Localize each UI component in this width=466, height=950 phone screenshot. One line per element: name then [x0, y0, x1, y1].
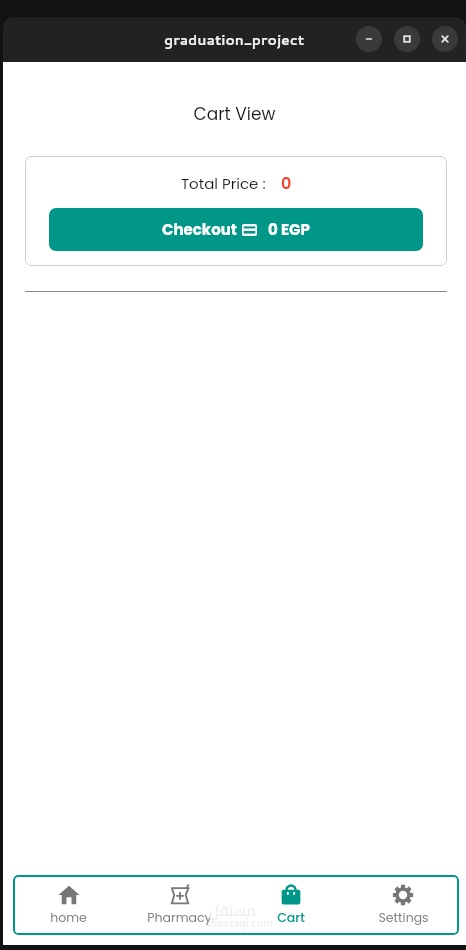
button[interactable]: Close	[432, 26, 458, 52]
staticText: Cart View	[3, 102, 466, 126]
staticText: Total Price :	[181, 173, 266, 194]
staticText: مستقل	[209, 896, 257, 924]
staticText: mostaql.com	[208, 915, 273, 931]
staticText: Cart	[277, 909, 305, 926]
button[interactable]: Settings	[347, 875, 459, 935]
staticText: graduation_project	[164, 30, 305, 50]
button[interactable]: Cart	[235, 875, 347, 935]
staticText: home	[50, 909, 87, 926]
button[interactable]: Maximize	[394, 26, 420, 52]
staticText: Pharmacy	[147, 909, 212, 926]
button[interactable]: home	[13, 875, 124, 935]
staticText: Settings	[378, 909, 429, 926]
button[interactable]: Checkout	[49, 208, 423, 251]
staticText: 0	[281, 172, 292, 194]
staticText: 0 EGP	[268, 219, 310, 240]
staticText: Checkout	[162, 219, 237, 240]
button[interactable]: Pharmacy	[124, 875, 235, 935]
button[interactable]: Minimize	[356, 26, 382, 52]
